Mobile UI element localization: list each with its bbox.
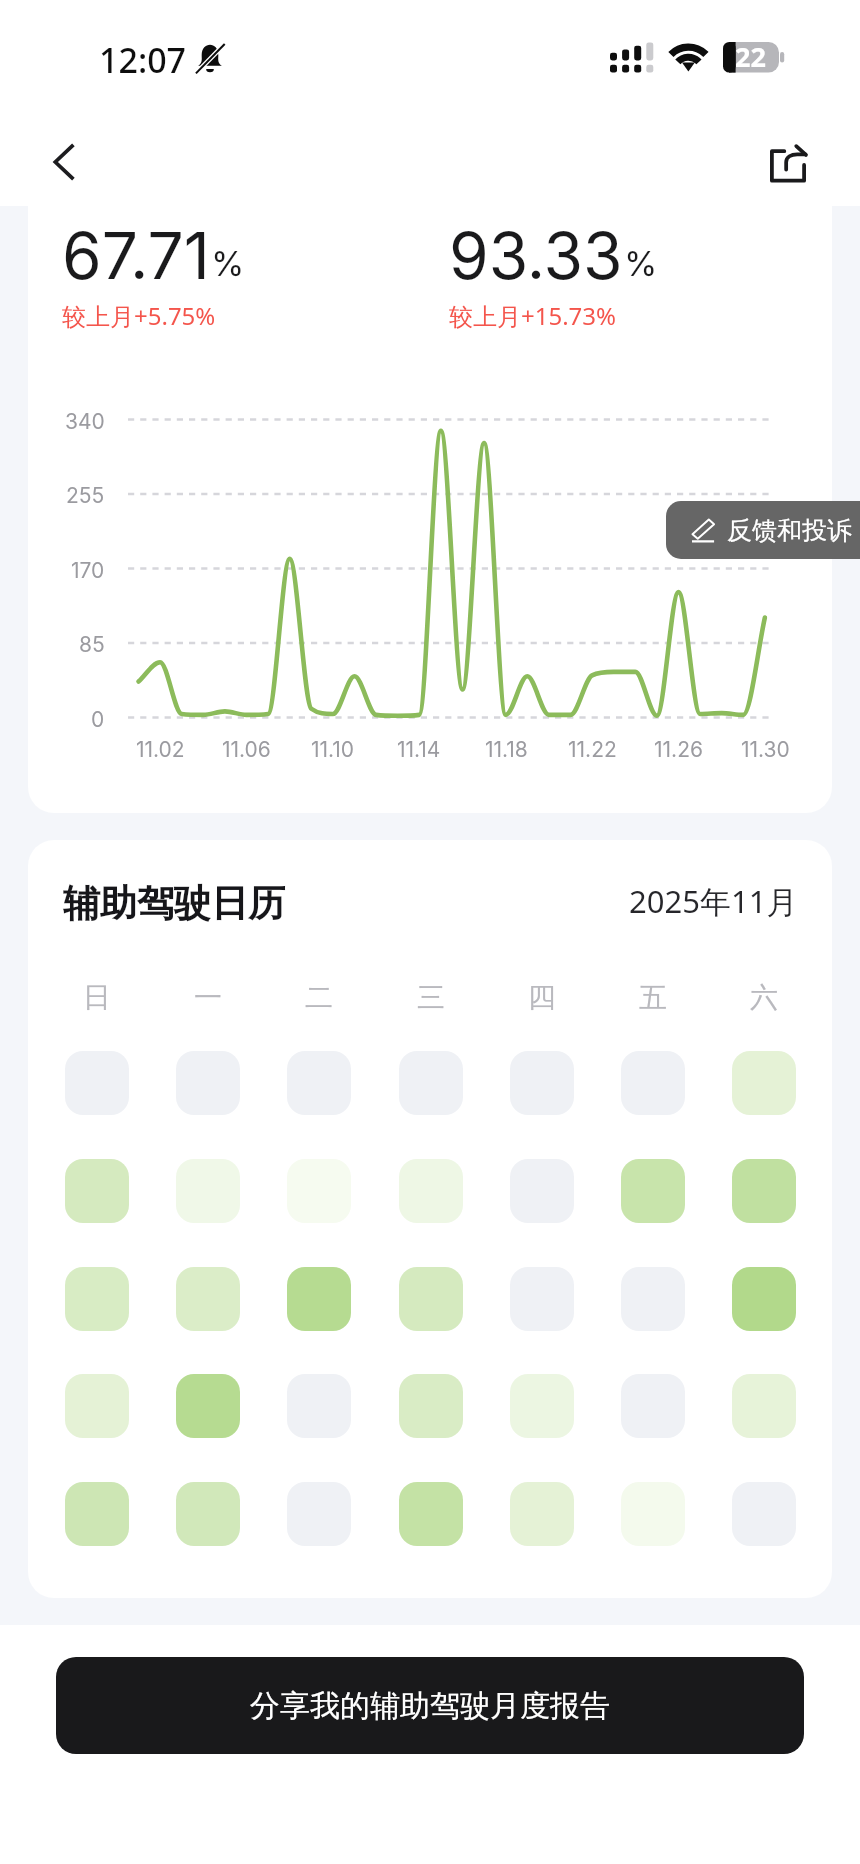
staticText: 11.30 bbox=[741, 737, 790, 762]
button[interactable] bbox=[621, 1051, 685, 1115]
staticText: % bbox=[211, 243, 245, 284]
staticText: 67.71 bbox=[62, 217, 210, 294]
staticText: 反馈和投诉 bbox=[727, 515, 852, 546]
button[interactable] bbox=[287, 1267, 351, 1331]
button[interactable] bbox=[510, 1482, 574, 1546]
staticText: 较上月+5.75% bbox=[62, 299, 216, 332]
staticText: 11.14 bbox=[397, 737, 441, 762]
button[interactable] bbox=[65, 1159, 129, 1223]
button[interactable]: 反馈和投诉 bbox=[666, 501, 860, 559]
staticText: 22 bbox=[735, 38, 766, 69]
button[interactable] bbox=[176, 1051, 240, 1115]
button[interactable] bbox=[65, 1051, 129, 1115]
button[interactable]: Share bbox=[757, 134, 819, 196]
staticText: 93.33 bbox=[449, 217, 623, 294]
staticText: 11.26 bbox=[654, 737, 703, 762]
button[interactable]: Back bbox=[34, 131, 96, 193]
button[interactable] bbox=[176, 1482, 240, 1546]
staticText: 一 bbox=[194, 980, 222, 1015]
staticText: 辅助驾驶日历 bbox=[63, 880, 285, 927]
button[interactable] bbox=[621, 1159, 685, 1223]
staticText: 分享我的辅助驾驶月度报告 bbox=[250, 1687, 610, 1725]
button[interactable] bbox=[732, 1051, 796, 1115]
button[interactable] bbox=[399, 1051, 463, 1115]
button[interactable] bbox=[399, 1482, 463, 1546]
staticText: 日 bbox=[83, 980, 111, 1015]
button[interactable]: 分享我的辅助驾驶月度报告 bbox=[56, 1657, 804, 1754]
button[interactable] bbox=[65, 1482, 129, 1546]
button[interactable] bbox=[510, 1267, 574, 1331]
button[interactable] bbox=[621, 1374, 685, 1438]
button[interactable] bbox=[732, 1374, 796, 1438]
button[interactable] bbox=[287, 1159, 351, 1223]
button[interactable] bbox=[510, 1051, 574, 1115]
staticText: 11.06 bbox=[222, 737, 271, 762]
staticText: 2025年11月 bbox=[629, 880, 798, 922]
button[interactable] bbox=[287, 1482, 351, 1546]
button[interactable] bbox=[399, 1374, 463, 1438]
button[interactable] bbox=[65, 1267, 129, 1331]
button[interactable] bbox=[510, 1159, 574, 1223]
button[interactable] bbox=[399, 1159, 463, 1223]
staticText: 255 bbox=[66, 483, 105, 508]
staticText: 二 bbox=[305, 980, 333, 1015]
staticText: 170 bbox=[71, 558, 105, 583]
button[interactable] bbox=[399, 1267, 463, 1331]
button[interactable] bbox=[732, 1267, 796, 1331]
staticText: 11.02 bbox=[136, 737, 185, 762]
staticText: 三 bbox=[417, 980, 445, 1015]
staticText: 11.18 bbox=[485, 737, 528, 762]
staticText: 12:07 bbox=[99, 37, 187, 83]
button[interactable] bbox=[287, 1374, 351, 1438]
staticText: 较上月+15.73% bbox=[449, 299, 617, 332]
staticText: 五 bbox=[639, 980, 667, 1015]
button[interactable] bbox=[65, 1374, 129, 1438]
button[interactable] bbox=[621, 1482, 685, 1546]
staticText: 85 bbox=[79, 632, 105, 657]
button[interactable] bbox=[510, 1374, 574, 1438]
staticText: 340 bbox=[65, 409, 105, 434]
button[interactable] bbox=[287, 1051, 351, 1115]
staticText: 11.10 bbox=[311, 737, 355, 762]
button[interactable] bbox=[176, 1267, 240, 1331]
button[interactable] bbox=[176, 1159, 240, 1223]
button[interactable] bbox=[732, 1482, 796, 1546]
button[interactable] bbox=[176, 1374, 240, 1438]
staticText: 0 bbox=[91, 707, 105, 732]
staticText: 六 bbox=[750, 980, 778, 1015]
staticText: 11.22 bbox=[568, 737, 617, 762]
button[interactable] bbox=[732, 1159, 796, 1223]
button[interactable] bbox=[621, 1267, 685, 1331]
staticText: % bbox=[624, 243, 658, 284]
staticText: 四 bbox=[528, 980, 556, 1015]
